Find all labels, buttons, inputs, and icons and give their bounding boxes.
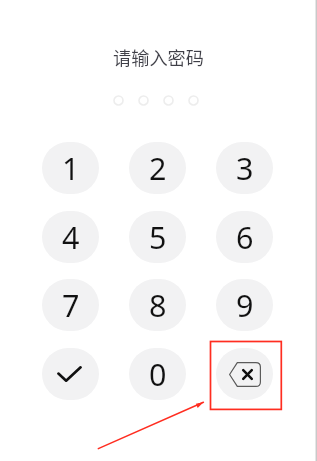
button[interactable]: 9 [216, 279, 273, 331]
staticText: 9 [236, 284, 254, 326]
staticText: 0 [149, 353, 167, 395]
staticText: 5 [149, 216, 167, 258]
staticText: 4 [62, 216, 80, 258]
staticText: 7 [62, 284, 80, 326]
staticText: 8 [149, 284, 167, 326]
button[interactable]: 0 [129, 348, 186, 400]
button[interactable]: 2 [129, 142, 186, 194]
button[interactable]: 3 [216, 142, 273, 194]
button[interactable]: 6 [216, 211, 273, 263]
button[interactable]: 7 [42, 279, 99, 331]
staticText: 3 [236, 147, 254, 189]
button[interactable]: 4 [42, 211, 99, 263]
button[interactable]: 8 [129, 279, 186, 331]
staticText: 1 [62, 147, 80, 189]
button[interactable]: Confirm [42, 348, 99, 400]
staticText: 请输入密码 [113, 44, 204, 70]
staticText: 2 [149, 147, 167, 189]
button[interactable]: 1 [42, 142, 99, 194]
button[interactable]: Backspace [216, 348, 273, 400]
button[interactable]: 5 [129, 211, 186, 263]
staticText: 6 [236, 216, 254, 258]
